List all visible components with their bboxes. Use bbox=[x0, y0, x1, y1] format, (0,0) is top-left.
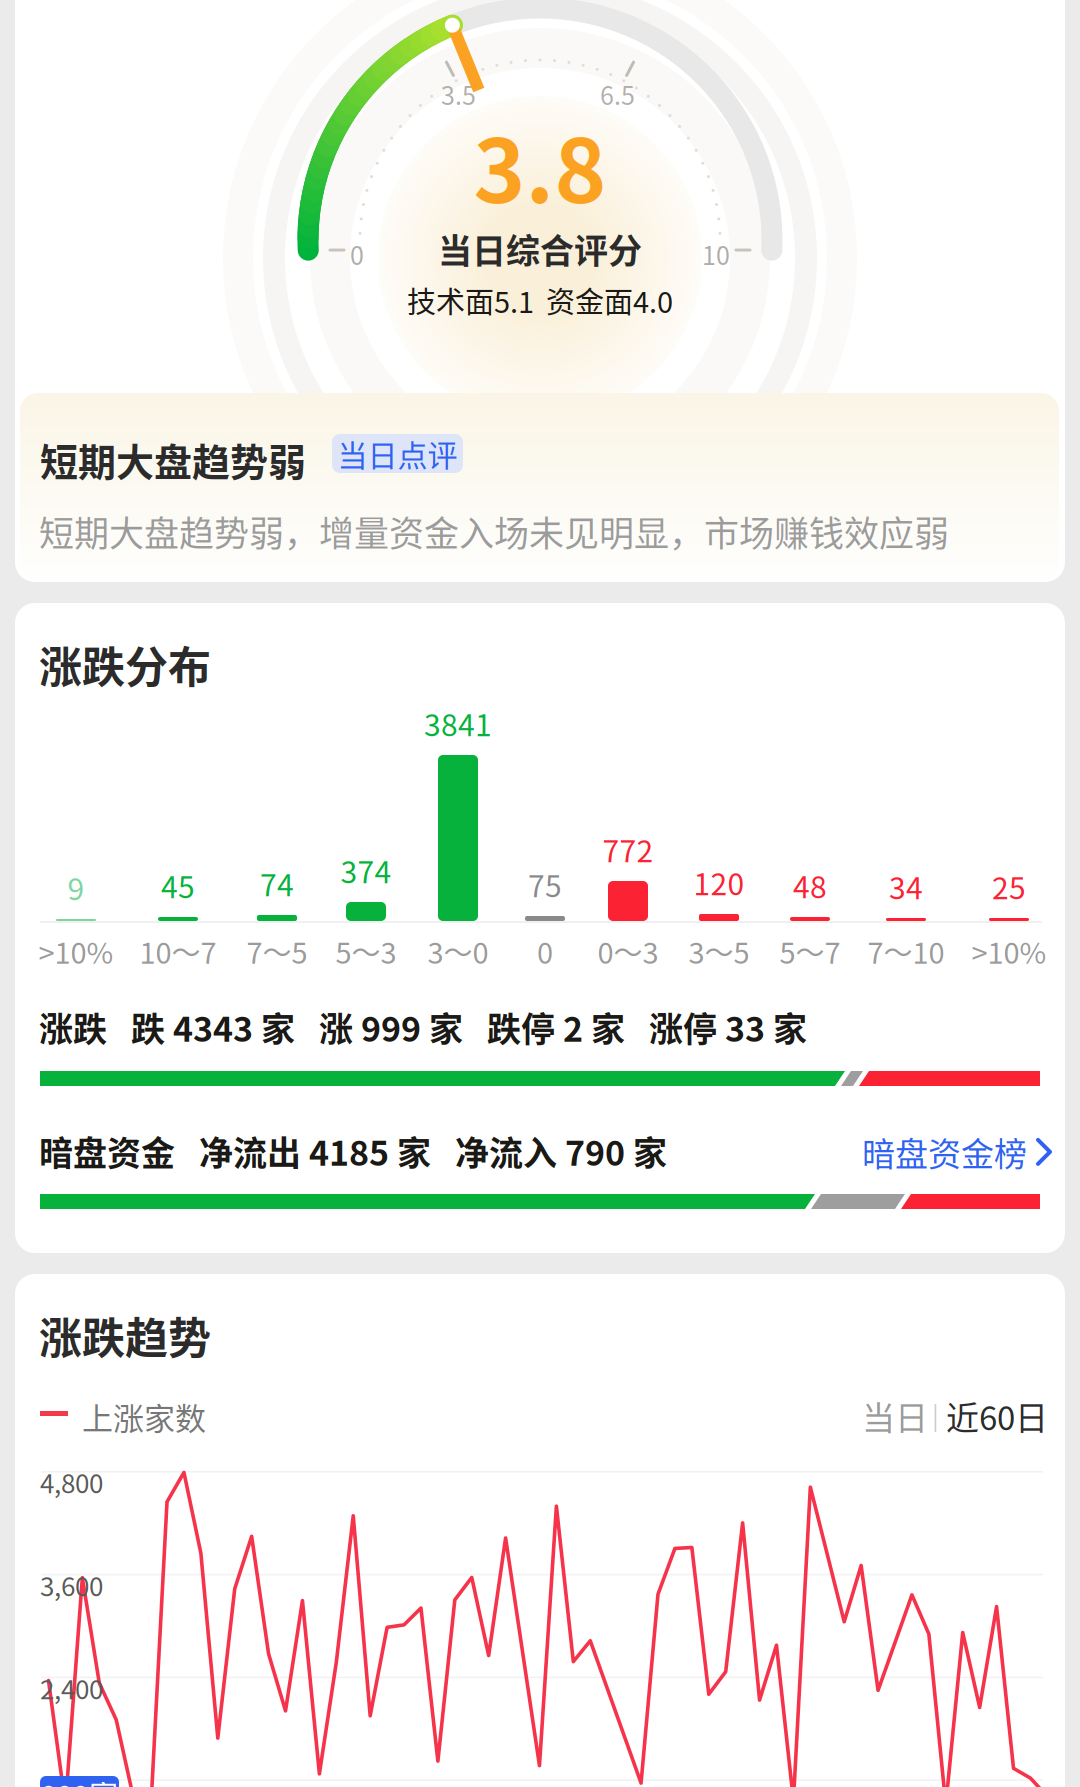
staticText: 5～3 bbox=[335, 930, 396, 972]
staticText: 10～7 bbox=[139, 930, 216, 972]
staticText: 暗盘资金 净流出 4185 家 净流入 790 家 bbox=[39, 1127, 667, 1175]
staticText: >10% bbox=[38, 930, 113, 972]
staticText: 上涨家数 bbox=[82, 1394, 206, 1439]
staticText: >10% bbox=[971, 930, 1046, 972]
staticText: 10 bbox=[702, 236, 730, 272]
staticText: 3.5 bbox=[441, 76, 476, 112]
staticText: 34 bbox=[889, 865, 923, 908]
staticText: 当日点评 bbox=[337, 432, 457, 475]
staticText: 9 bbox=[67, 866, 84, 909]
staticText: 3841 bbox=[424, 702, 492, 745]
staticText: 74 bbox=[260, 862, 294, 905]
staticText: 短期大盘趋势弱，增量资金入场未见明显，市场赚钱效应弱 bbox=[39, 506, 949, 557]
staticText: 涨跌趋势 bbox=[39, 1304, 211, 1366]
staticText: 0 bbox=[537, 930, 553, 972]
staticText: 4,800 bbox=[40, 1463, 103, 1501]
staticText: 48 bbox=[793, 864, 827, 907]
staticText: 3,600 bbox=[40, 1566, 103, 1604]
staticText: 75 bbox=[528, 863, 562, 906]
staticText: 暗盘资金榜 bbox=[862, 1128, 1027, 1176]
staticText: 7～5 bbox=[246, 930, 307, 972]
staticText: 短期大盘趋势弱 bbox=[40, 432, 306, 487]
staticText: 1,200 bbox=[40, 1771, 103, 1787]
staticText: 技术面5.1 资金面4.0 bbox=[407, 280, 673, 321]
button[interactable]: 短期大盘趋势弱 bbox=[40, 432, 306, 487]
staticText: 45 bbox=[161, 864, 195, 907]
button[interactable]: 暗盘资金榜 bbox=[862, 1128, 1053, 1176]
staticText: 3.8 bbox=[473, 101, 606, 228]
staticText: 涨跌 跌 4343 家 涨 999 家 跌停 2 家 涨停 33 家 bbox=[39, 1003, 807, 1051]
staticText: 0～3 bbox=[597, 930, 658, 972]
button[interactable]: 当日 bbox=[862, 1392, 928, 1440]
staticText: 近60日 bbox=[946, 1392, 1048, 1440]
staticText: 0 bbox=[350, 236, 364, 272]
button[interactable]: 近60日 bbox=[946, 1392, 1048, 1440]
staticText: 当日 bbox=[862, 1392, 928, 1440]
staticText: 涨跌分布 bbox=[39, 633, 211, 695]
staticText: | bbox=[932, 1396, 939, 1432]
staticText: 5～7 bbox=[779, 930, 840, 972]
staticText: 当日综合评分 bbox=[438, 224, 642, 273]
staticText: 120 bbox=[693, 861, 744, 904]
staticText: 25 bbox=[992, 865, 1026, 908]
staticText: 7～10 bbox=[867, 930, 944, 972]
staticText: 3～5 bbox=[688, 930, 749, 972]
staticText: 374 bbox=[340, 849, 391, 892]
staticText: 3～0 bbox=[427, 930, 488, 972]
staticText: 772 bbox=[602, 828, 653, 871]
staticText: 6.5 bbox=[600, 76, 635, 112]
staticText: 2,400 bbox=[40, 1669, 103, 1707]
staticText: 999家 bbox=[41, 1773, 118, 1787]
